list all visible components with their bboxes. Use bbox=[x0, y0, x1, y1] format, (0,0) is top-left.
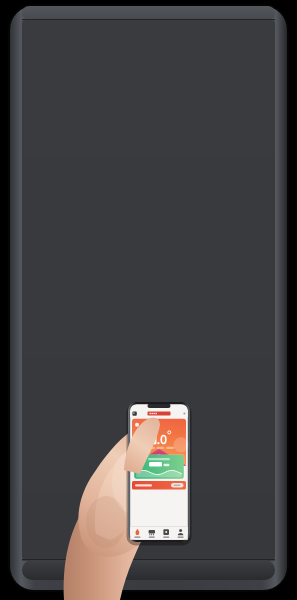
button[interactable]: Smart home thermostat app preview bbox=[0, 0, 297, 600]
